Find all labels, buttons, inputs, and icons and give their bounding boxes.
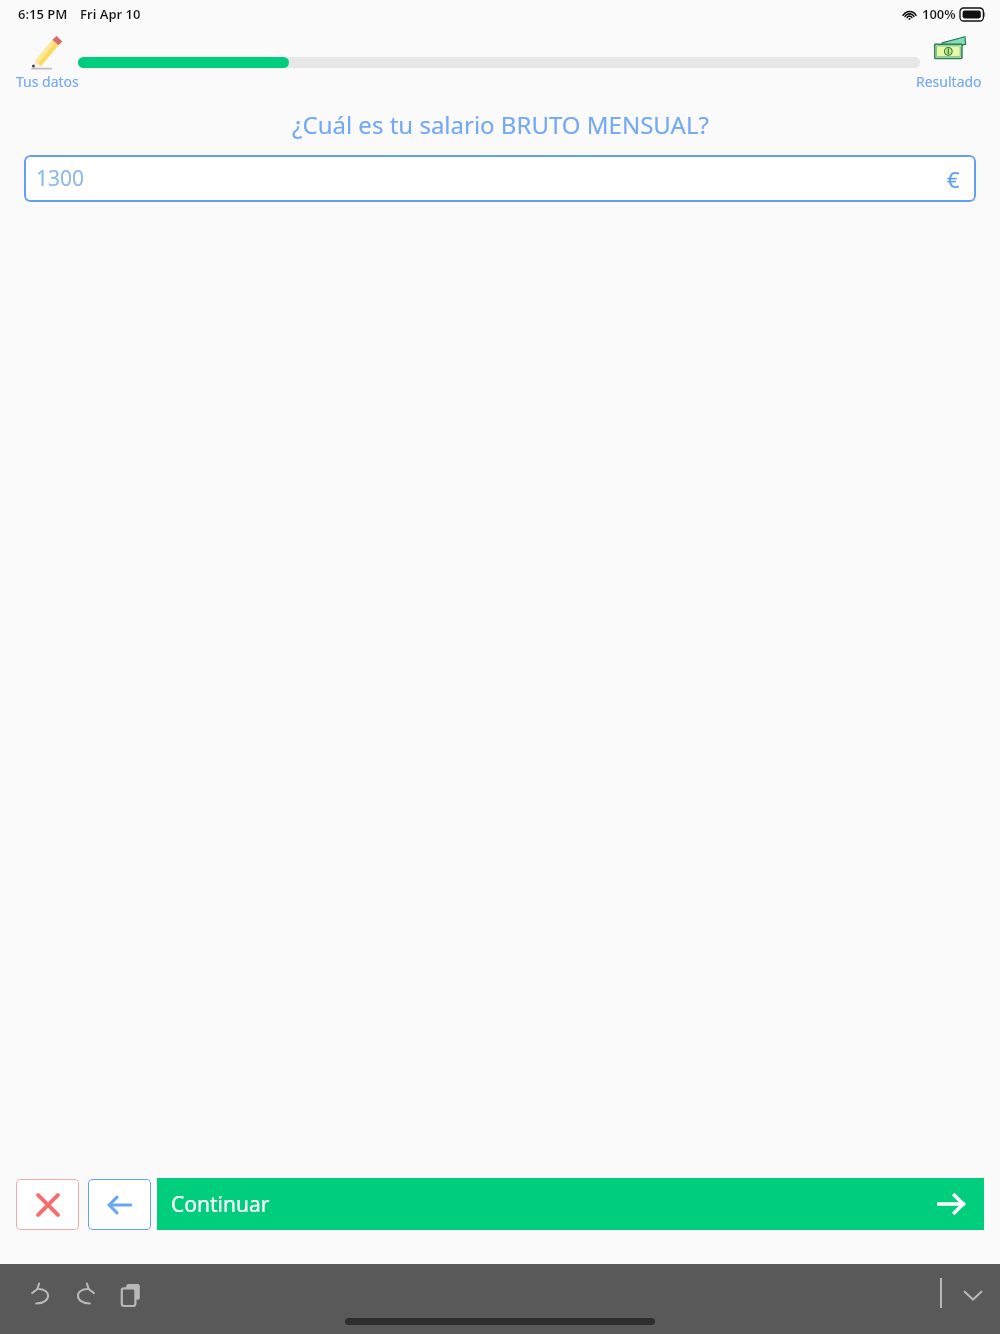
button[interactable]: Atrás xyxy=(88,1179,151,1230)
staticText: 100% xyxy=(922,5,956,23)
button[interactable]: Ocultar teclado xyxy=(954,1276,992,1314)
other: Tus datos xyxy=(30,34,64,68)
button[interactable]: Portapapeles xyxy=(112,1276,150,1314)
button[interactable]: Rehacer xyxy=(66,1276,104,1314)
button[interactable]: Deshacer xyxy=(22,1276,60,1314)
other: Resultado xyxy=(932,34,966,68)
button[interactable]: Cancelar xyxy=(16,1179,79,1230)
staticText: Continuar xyxy=(171,1190,270,1219)
staticText: 1300 xyxy=(36,164,85,193)
button[interactable]: Tus datos xyxy=(10,28,84,91)
staticText: € xyxy=(947,164,960,194)
staticText: Fri Apr 10 xyxy=(80,5,141,23)
button[interactable]: Continuar xyxy=(157,1178,984,1230)
staticText: ¿Cuál es tu salario BRUTO MENSUAL? xyxy=(292,108,709,141)
staticText: Resultado xyxy=(916,72,982,91)
staticText: Tus datos xyxy=(16,72,79,91)
button[interactable]: Resultado xyxy=(906,28,992,91)
button[interactable]: 1300 xyxy=(24,155,976,202)
staticText: 6:15 PM xyxy=(18,5,68,23)
